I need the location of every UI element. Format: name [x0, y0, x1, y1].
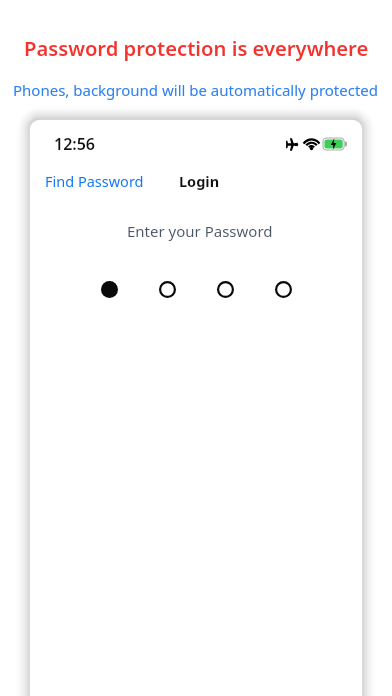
staticText: Password protection is everywhere: [24, 34, 369, 62]
staticText: 12:56: [54, 133, 96, 155]
button[interactable]: Login: [179, 171, 220, 191]
staticText: Find Password: [45, 171, 144, 191]
staticText: Phones, background will be automatically…: [13, 80, 379, 100]
staticText: Enter your Password: [127, 221, 273, 241]
button[interactable]: Find Password: [45, 171, 144, 191]
staticText: Login: [179, 171, 220, 191]
